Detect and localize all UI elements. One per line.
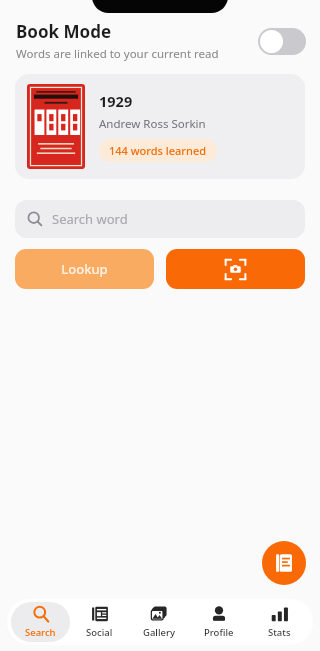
- staticText: Words are linked to your current read: [16, 46, 219, 62]
- button[interactable]: Gallery: [129, 602, 189, 642]
- staticText: Stats: [268, 626, 291, 639]
- button[interactable]: Lookup: [15, 249, 154, 289]
- button[interactable]: Open book: [262, 541, 306, 585]
- button[interactable]: 1929: [15, 74, 305, 179]
- button[interactable]: Search word: [15, 200, 305, 238]
- staticText: Social: [86, 626, 113, 639]
- staticText: Andrew Ross Sorkin: [99, 116, 206, 132]
- staticText: 144 words learned: [109, 143, 207, 158]
- staticText: 1929: [99, 91, 133, 111]
- staticText: Search word: [52, 210, 128, 228]
- button[interactable]: Profile: [189, 602, 249, 642]
- button[interactable]: Search: [11, 602, 70, 642]
- staticText: Book Mode: [16, 20, 112, 43]
- staticText: Lookup: [61, 260, 108, 278]
- button[interactable]: Scan word with camera: [166, 249, 305, 289]
- button[interactable]: Book Mode toggle: [258, 28, 306, 55]
- staticText: Gallery: [143, 626, 175, 639]
- button[interactable]: Stats: [249, 602, 309, 642]
- staticText: Profile: [204, 626, 234, 639]
- staticText: Search: [25, 626, 56, 639]
- button[interactable]: Social: [70, 602, 129, 642]
